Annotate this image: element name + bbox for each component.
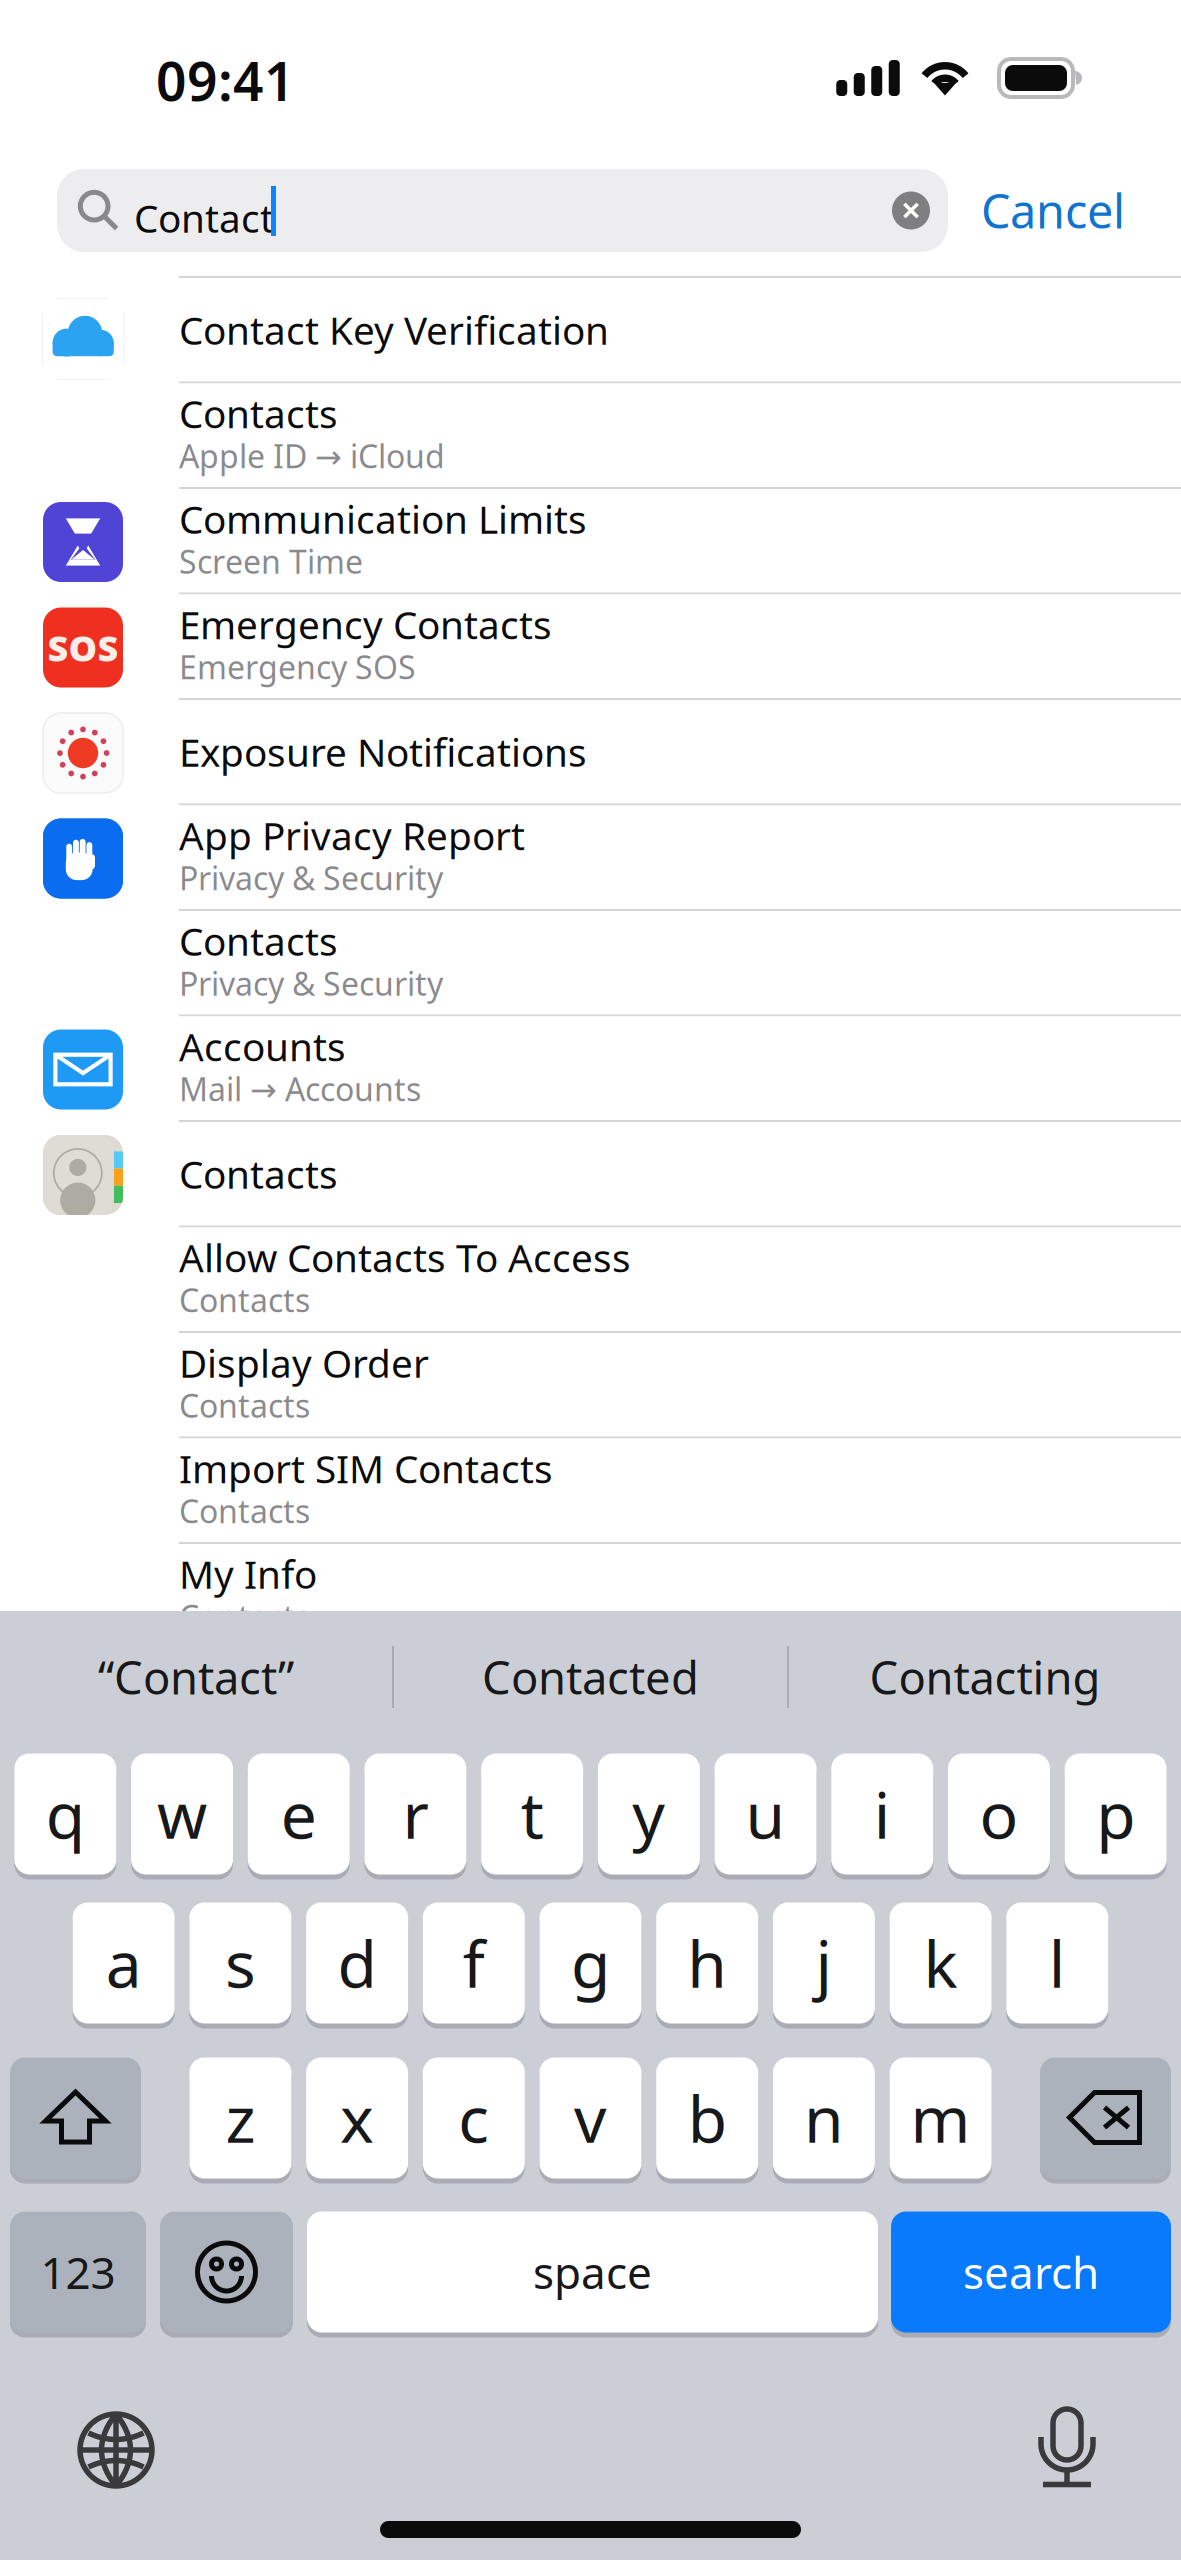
staticText: “Contact” xyxy=(98,1647,294,1707)
staticText: Accounts xyxy=(179,1020,346,1072)
staticText: search xyxy=(963,2243,1099,2301)
staticText: Contacts xyxy=(179,387,338,439)
button[interactable]: Cancel xyxy=(962,169,1144,252)
button[interactable]: Contacts xyxy=(0,383,1181,489)
staticText: Contacts xyxy=(179,915,338,966)
button[interactable]: m xyxy=(890,2055,992,2181)
button[interactable]: v xyxy=(539,2055,641,2181)
staticText: Apple ID → iCloud xyxy=(179,434,445,477)
button[interactable]: My Info xyxy=(0,1544,1181,1649)
staticText: Exposure Notifications xyxy=(179,726,587,777)
staticText: g xyxy=(571,1920,610,2005)
staticText: Contacts xyxy=(179,1384,310,1426)
button[interactable]: Contacts xyxy=(0,1122,1181,1227)
button[interactable]: Contacts xyxy=(0,911,1181,1016)
button[interactable]: r xyxy=(364,1751,466,1877)
button[interactable]: Contacting xyxy=(789,1611,1181,1743)
staticText: Contacts xyxy=(179,1148,338,1199)
button[interactable]: j xyxy=(773,1900,875,2026)
button[interactable]: Import SIM Contacts xyxy=(0,1438,1181,1544)
button[interactable]: b xyxy=(656,2055,758,2181)
staticText: a xyxy=(106,1920,142,2005)
button[interactable]: o xyxy=(948,1751,1050,1877)
staticText: f xyxy=(463,1920,485,2005)
staticText: Contacts xyxy=(179,1489,310,1532)
button[interactable]: Emoji xyxy=(160,2209,293,2335)
staticText: Contact Key Verification xyxy=(179,304,609,355)
button[interactable]: space xyxy=(307,2209,878,2335)
button[interactable]: k xyxy=(890,1900,992,2026)
button[interactable]: App Privacy Report xyxy=(0,805,1181,911)
button[interactable]: 123 xyxy=(10,2209,146,2335)
staticText: r xyxy=(402,1771,428,1856)
button[interactable]: Clear text xyxy=(874,169,948,252)
staticText: h xyxy=(687,1920,727,2005)
button[interactable]: search xyxy=(891,2209,1171,2335)
button[interactable]: Allow Contacts To Access xyxy=(0,1227,1181,1333)
button[interactable]: d xyxy=(306,1900,408,2026)
button[interactable]: Contact Key Verification xyxy=(0,278,1181,383)
staticText: Contact xyxy=(134,192,274,243)
button[interactable]: i xyxy=(831,1751,933,1877)
button[interactable]: u xyxy=(715,1751,817,1877)
button[interactable]: z xyxy=(189,2055,291,2181)
button[interactable]: e xyxy=(248,1751,350,1877)
button[interactable]: c xyxy=(423,2055,525,2181)
staticText: Contacts xyxy=(179,1595,310,1637)
button[interactable]: Change keyboard xyxy=(51,2385,181,2515)
button[interactable]: Contacted xyxy=(394,1611,787,1743)
button[interactable]: q xyxy=(14,1751,116,1877)
button[interactable]: l xyxy=(1006,1900,1108,2026)
button[interactable]: a xyxy=(73,1900,175,2026)
button[interactable]: Communication Limits xyxy=(0,489,1181,594)
button[interactable]: SOS xyxy=(0,594,1181,700)
button[interactable]: “Contact” xyxy=(0,1611,392,1743)
staticText: App Privacy Report xyxy=(179,809,525,861)
staticText: Cancel xyxy=(981,179,1125,241)
staticText: z xyxy=(225,2075,255,2160)
button[interactable]: Exposure Notifications xyxy=(0,700,1181,805)
button[interactable]: n xyxy=(773,2055,875,2181)
staticText: Import SIM Contacts xyxy=(179,1442,553,1494)
staticText: m xyxy=(911,2075,971,2160)
button[interactable]: Shift xyxy=(10,2055,141,2181)
button[interactable]: g xyxy=(539,1900,641,2026)
staticText: Screen Time xyxy=(179,540,363,582)
button[interactable]: s xyxy=(189,1900,291,2026)
staticText: Display Order xyxy=(179,1337,429,1388)
button[interactable]: y xyxy=(598,1751,700,1877)
button[interactable]: h xyxy=(656,1900,758,2026)
button[interactable]: Delete xyxy=(1040,2055,1171,2181)
staticText: 09:41 xyxy=(156,45,295,116)
staticText: Contacting xyxy=(869,1647,1100,1707)
staticText: Communication Limits xyxy=(179,493,587,544)
button[interactable]: Accounts xyxy=(0,1016,1181,1122)
button[interactable]: p xyxy=(1065,1751,1167,1877)
button[interactable]: x xyxy=(306,2055,408,2181)
staticText: My Info xyxy=(179,1548,317,1599)
button[interactable]: Display Order xyxy=(0,1333,1181,1438)
button[interactable]: t xyxy=(481,1751,583,1877)
button[interactable]: f xyxy=(423,1900,525,2026)
staticText: SOS xyxy=(47,624,118,671)
staticText: i xyxy=(874,1771,891,1856)
staticText: b xyxy=(688,2075,727,2160)
staticText: e xyxy=(281,1771,317,1856)
staticText: n xyxy=(804,2075,844,2160)
staticText: p xyxy=(1096,1771,1135,1856)
staticText: y xyxy=(632,1771,665,1856)
staticText: j xyxy=(815,1920,832,2005)
staticText: v xyxy=(574,2075,607,2160)
staticText: d xyxy=(338,1920,377,2005)
staticText: o xyxy=(979,1771,1018,1856)
staticText: Contacts xyxy=(179,1278,310,1321)
staticText: x xyxy=(340,2075,374,2160)
staticText: Contacted xyxy=(482,1647,699,1707)
button[interactable]: Dictate xyxy=(1002,2383,1132,2513)
staticText: Mail → Accounts xyxy=(179,1067,421,1110)
staticText: w xyxy=(157,1771,207,1856)
staticText: q xyxy=(46,1771,85,1856)
button[interactable]: w xyxy=(131,1751,233,1877)
staticText: s xyxy=(225,1920,256,2005)
staticText: Emergency SOS xyxy=(179,645,416,688)
